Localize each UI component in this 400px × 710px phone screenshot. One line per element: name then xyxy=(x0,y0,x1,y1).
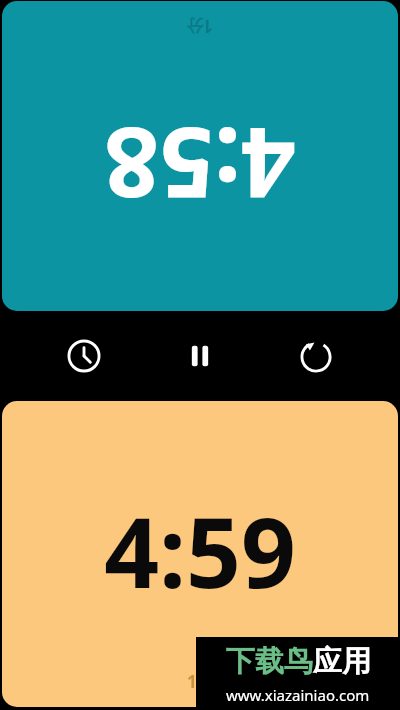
staticText: 4:59 xyxy=(2,485,398,616)
staticText: 应用 xyxy=(313,643,371,680)
button[interactable]: Pause xyxy=(168,324,232,388)
staticText: www.xiazainiao.com xyxy=(226,685,370,705)
button[interactable]: 4:59 xyxy=(2,401,398,707)
button[interactable]: 1分 xyxy=(2,1,398,311)
button[interactable]: Set time xyxy=(52,324,116,388)
staticText: 4:58 xyxy=(2,100,398,231)
button[interactable]: Restart xyxy=(284,324,348,388)
staticText: 1分 xyxy=(187,670,214,693)
staticText: 1分 xyxy=(186,15,213,38)
staticText: 下载鸟 xyxy=(226,643,313,680)
